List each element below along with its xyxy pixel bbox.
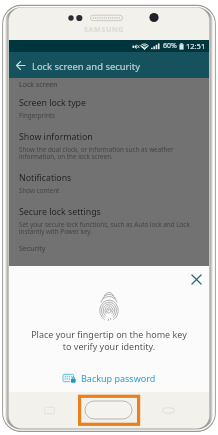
staticText: 12:51 (186, 41, 206, 51)
staticText: Show content (19, 186, 60, 195)
button[interactable]: Screen lock type (9, 92, 209, 126)
button[interactable]: Notifications (9, 167, 209, 201)
button[interactable]: Show information (9, 126, 209, 167)
button[interactable]: Recents (40, 403, 60, 418)
button[interactable]: Close (188, 271, 205, 288)
staticText: Screen lock type (19, 97, 86, 109)
staticText: Backup password (81, 372, 156, 384)
staticText: 60% (163, 41, 177, 51)
staticText: Place your fingertip on the home key to … (31, 328, 187, 352)
button[interactable]: Home (85, 401, 132, 419)
staticText: Security (19, 244, 46, 254)
button[interactable]: Backup password (59, 369, 160, 387)
button[interactable]: Back (9, 54, 32, 77)
staticText: Lock screen (19, 80, 58, 90)
staticText: Notifications (19, 172, 72, 184)
staticText: Lock screen and security (32, 60, 140, 73)
staticText: Set your secure lock functions, such as … (19, 220, 190, 236)
staticText: Fingerprints (19, 111, 56, 120)
staticText: SAMSUNG (84, 25, 125, 35)
staticText: Show information (19, 131, 93, 143)
staticText: Secure lock settings (19, 206, 101, 218)
staticText: Show the dual clock, or information such… (19, 145, 174, 161)
button[interactable]: Secure lock settings (9, 201, 209, 242)
button[interactable]: Back (158, 403, 178, 418)
